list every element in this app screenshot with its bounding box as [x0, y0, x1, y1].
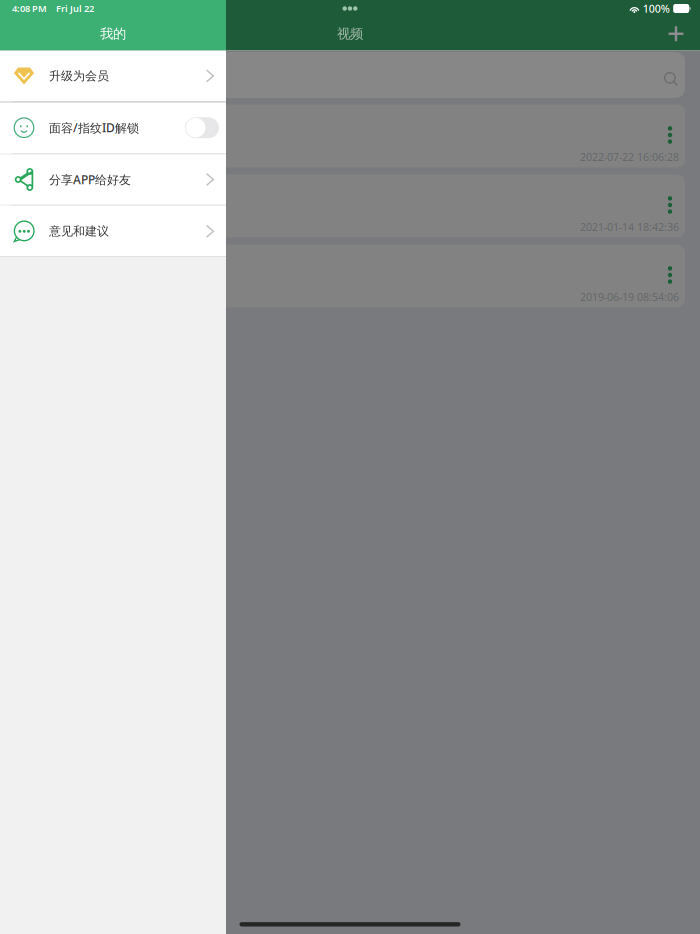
button[interactable]: 意见和建议: [0, 206, 226, 257]
button[interactable]: 升级为会员: [0, 50, 226, 101]
staticText: 分享APP给好友: [49, 171, 131, 187]
staticText: 我的: [100, 26, 126, 42]
button[interactable]: 分享APP给好友: [0, 154, 226, 205]
staticText: 2021-01-14 18:42:36: [580, 220, 679, 234]
staticText: 视频: [337, 26, 363, 42]
staticText: 面容/指纹ID解锁: [49, 120, 139, 136]
button[interactable]: 面容/指纹ID解锁: [0, 102, 226, 153]
staticText: 2019-06-19 08:54:06: [580, 290, 679, 304]
button[interactable]: Search: [0, 52, 685, 98]
staticText: 意见和建议: [49, 224, 109, 239]
staticText: 2022-07-22 16:06:28: [580, 150, 679, 164]
button[interactable]: 2019-06-19 08:54:06: [0, 244, 685, 307]
button[interactable]: 2021-01-14 18:42:36: [0, 174, 685, 237]
button[interactable]: 2022-07-22 16:06:28: [0, 104, 685, 167]
staticText: 100%: [643, 1, 670, 16]
staticText: 4:08 PM: [12, 2, 47, 15]
staticText: 升级为会员: [49, 68, 109, 83]
staticText: Fri Jul 22: [56, 2, 94, 15]
button[interactable]: Add: [660, 18, 692, 50]
